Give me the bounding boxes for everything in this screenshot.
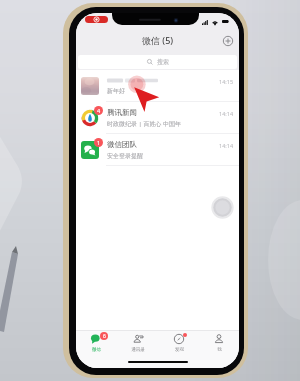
- button[interactable]: 6: [87, 333, 105, 354]
- staticText: 发现: [175, 347, 184, 353]
- staticText: 微信: [92, 347, 101, 353]
- button[interactable]: 发现: [170, 333, 188, 354]
- staticText: 新年好: [107, 87, 125, 95]
- staticText: 4: [97, 107, 101, 114]
- staticText: 微信 (5): [142, 34, 174, 46]
- button[interactable]: 通讯录: [127, 333, 149, 354]
- button[interactable]: 4: [76, 102, 239, 134]
- button[interactable]: 1: [76, 134, 239, 166]
- staticText: 1: [97, 139, 101, 146]
- button[interactable]: Add: [217, 30, 239, 52]
- button[interactable]: 我: [210, 333, 228, 354]
- staticText: 14:14: [219, 110, 234, 117]
- button[interactable]: 搜索: [78, 55, 237, 69]
- staticText: 安全登录提醒: [107, 152, 143, 160]
- staticText: 6: [103, 333, 106, 340]
- staticText: 14:14: [219, 142, 234, 149]
- button[interactable]: 新年好: [76, 70, 239, 102]
- staticText: 通讯录: [131, 347, 145, 353]
- staticText: 14:15: [219, 78, 234, 85]
- staticText: 微信团队: [107, 140, 137, 149]
- button[interactable]: Screen recording: [85, 16, 108, 23]
- staticText: 时政微纪录 | 百姓心 中国年: [107, 120, 181, 128]
- button[interactable]: Assistive touch: [211, 196, 234, 219]
- staticText: 腾讯新闻: [107, 108, 137, 117]
- staticText: 我: [217, 347, 222, 353]
- staticText: 搜索: [157, 58, 169, 66]
